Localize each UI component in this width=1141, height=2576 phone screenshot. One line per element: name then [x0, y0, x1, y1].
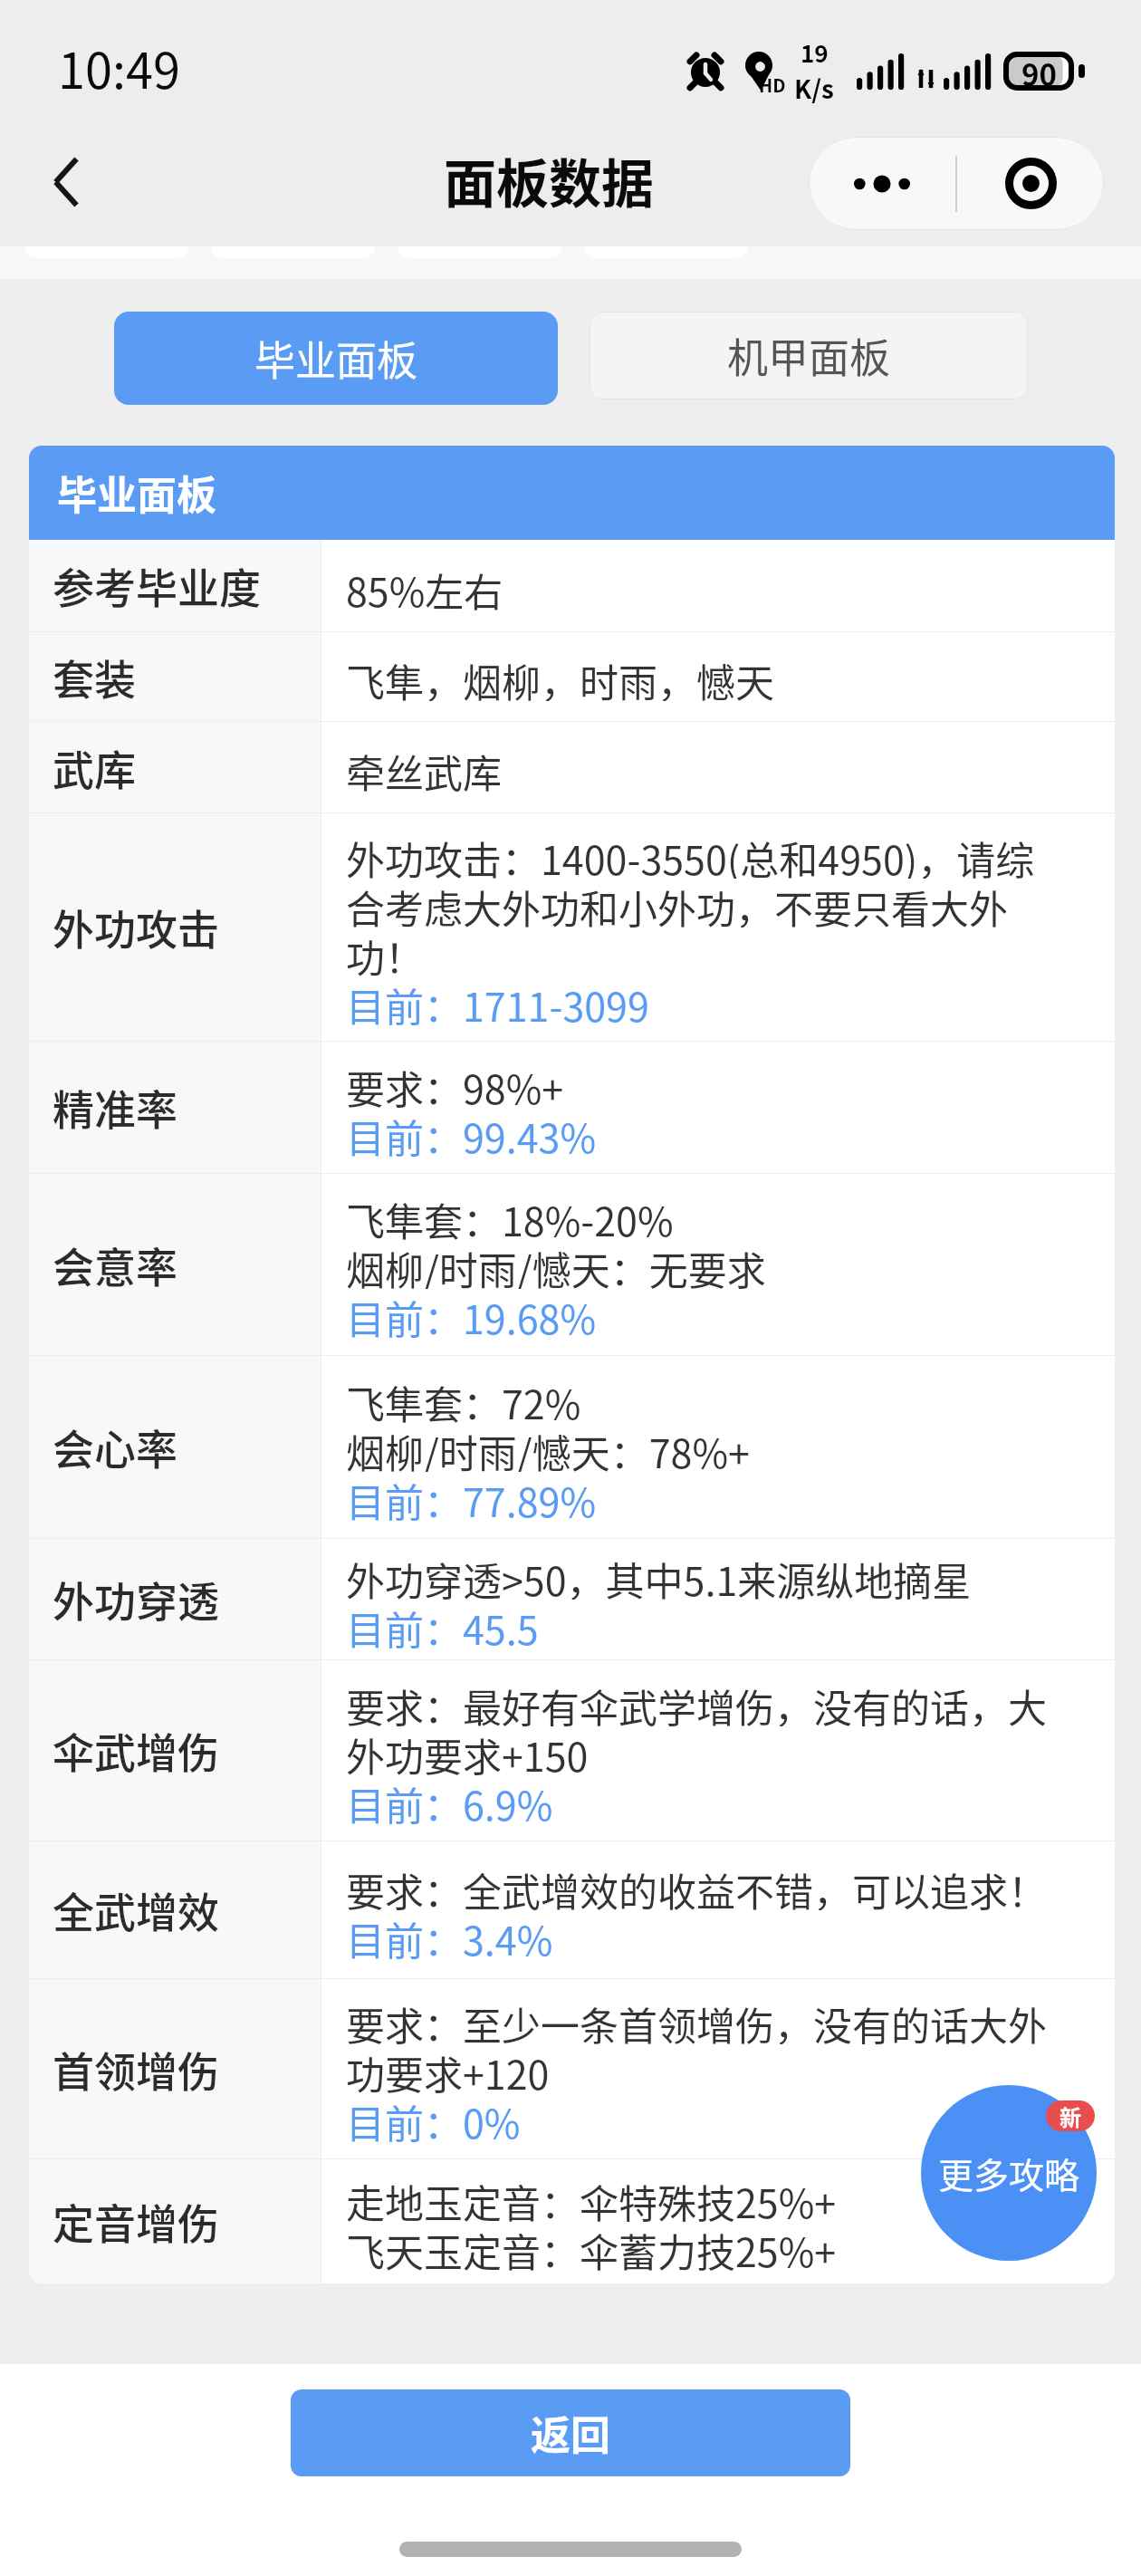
staticText: 走地玉定音：伞特殊技25%+ — [346, 2173, 837, 2222]
staticText: 更多攻略 — [938, 2148, 1080, 2198]
staticText: 飞隼套：18%-20% — [346, 1191, 674, 1240]
staticText: 外功要求+150 — [346, 1726, 589, 1775]
staticText: 飞隼，烟柳，时雨，憾天 — [346, 652, 774, 701]
staticText: 毕业面板 — [254, 329, 418, 388]
staticText: 85%左右 — [346, 562, 503, 610]
staticText: 伞武增伤 — [53, 1720, 219, 1781]
staticText: 要求：最好有伞武学增伤，没有的话，大 — [346, 1677, 1047, 1726]
staticText: 新 — [1059, 2100, 1081, 2131]
staticText: 目前：99.43% — [346, 1108, 597, 1157]
button[interactable]: 返回 — [291, 2389, 850, 2476]
staticText: 定音增伤 — [53, 2191, 219, 2252]
staticText: 外功穿透 — [53, 1569, 219, 1629]
staticText: 机甲面板 — [727, 326, 891, 385]
staticText: 外功攻击 — [53, 897, 219, 957]
staticText: 飞天玉定音：伞蓄力技25%+ — [346, 2222, 837, 2271]
staticText: 牵丝武库 — [346, 743, 502, 792]
staticText: 合考虑大外功和小外功，不要只看大外 — [346, 879, 1008, 928]
button[interactable]: Close — [957, 137, 1104, 230]
staticText: 会心率 — [53, 1417, 177, 1477]
staticText: 目前：77.89% — [346, 1472, 597, 1521]
staticText: K/s — [794, 70, 834, 107]
staticText: 外功攻击：1400-3550(总和4950)，请综 — [346, 830, 1035, 879]
staticText: 要求：至少一条首领增伤，没有的话大外 — [346, 1995, 1047, 2044]
staticText: 会意率 — [53, 1235, 177, 1295]
staticText: HD — [759, 72, 786, 98]
staticText: 目前：3.4% — [346, 1910, 553, 1959]
staticText: 飞隼套：72% — [346, 1374, 581, 1423]
staticText: 功要求+120 — [346, 2044, 550, 2093]
staticText: 参考毕业度 — [53, 555, 261, 616]
staticText: 套装 — [53, 647, 136, 707]
staticText: 目前：45.5 — [346, 1600, 539, 1648]
staticText: 外功穿透>50，其中5.1来源纵地摘星 — [346, 1551, 972, 1600]
button[interactable]: 毕业面板 — [114, 312, 558, 405]
button[interactable]: 更多攻略 — [921, 2085, 1097, 2261]
staticText: 19 — [801, 35, 829, 70]
staticText: 毕业面板 — [57, 464, 216, 522]
staticText: 首领增伤 — [53, 2039, 219, 2100]
staticText: 功！ — [346, 928, 424, 976]
staticText: 目前：19.68% — [346, 1289, 597, 1338]
button[interactable]: 机甲面板 — [590, 312, 1028, 399]
staticText: 要求：全武增效的收益不错，可以追求！ — [346, 1861, 1047, 1910]
staticText: 武库 — [53, 737, 136, 798]
staticText: 目前：1711-3099 — [346, 976, 649, 1025]
staticText: 烟柳/时雨/憾天：无要求 — [346, 1240, 766, 1289]
staticText: 返回 — [531, 2404, 610, 2462]
button[interactable]: More — [809, 137, 955, 230]
staticText: 目前：6.9% — [346, 1775, 553, 1824]
staticText: 烟柳/时雨/憾天：78%+ — [346, 1423, 750, 1472]
staticText: 要求：98%+ — [346, 1059, 564, 1108]
staticText: 目前：0% — [346, 2093, 521, 2142]
staticText: 全武增效 — [53, 1879, 219, 1940]
staticText: 面板数据 — [444, 142, 655, 218]
staticText: 10:49 — [58, 32, 180, 102]
button[interactable]: Back — [25, 141, 107, 223]
staticText: 精准率 — [53, 1077, 177, 1138]
staticText: 90 — [1021, 52, 1057, 91]
